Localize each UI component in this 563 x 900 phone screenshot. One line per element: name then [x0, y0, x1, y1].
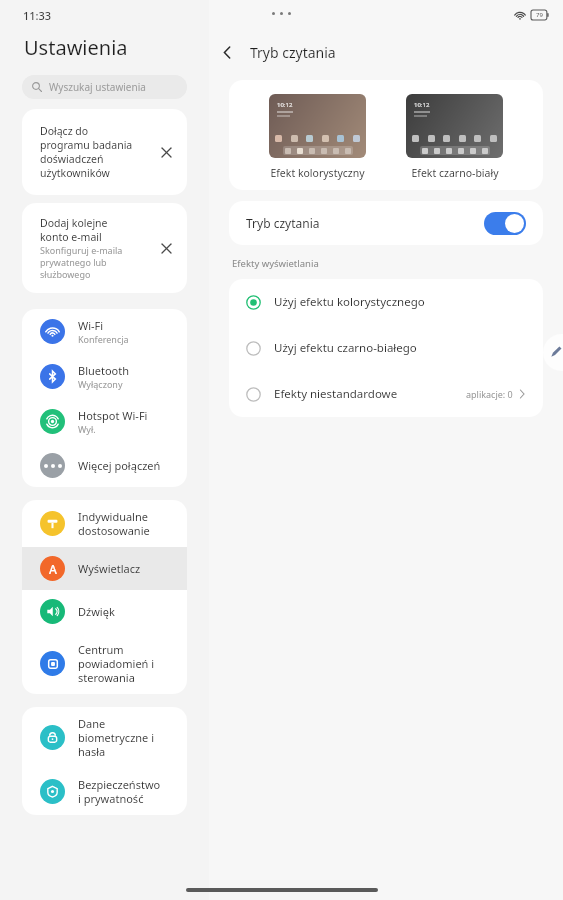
staticText: użytkowników [40, 166, 110, 180]
staticText: służbowego [40, 268, 91, 280]
staticText: Efekty niestandardowe [274, 386, 466, 402]
staticText: Efekty wyświetlania [232, 257, 319, 270]
button[interactable]: Centrum powiadomień i sterowania [22, 633, 187, 694]
button[interactable]: Zamknij [153, 139, 179, 165]
staticText: Indywidualne dostosowanie [78, 509, 150, 538]
button[interactable]: Tryb czytania przełącznik [484, 212, 526, 235]
staticText: Hotspot Wi-Fi [78, 408, 148, 423]
staticText: Efekt czarno-biały [411, 166, 499, 180]
staticText: Dźwięk [78, 604, 115, 619]
button[interactable]: Użyj efektu czarno-białego [229, 325, 543, 371]
button[interactable]: Wi-Fi [22, 309, 187, 354]
staticText: Centrum powiadomień i sterowania [78, 642, 155, 685]
staticText: Tryb czytania [246, 215, 484, 231]
staticText: Tryb czytania [250, 43, 336, 62]
button[interactable]: Efekty niestandardowe [229, 371, 543, 417]
staticText: Wył. [78, 423, 96, 435]
button[interactable]: Indywidualne dostosowanie [22, 500, 187, 547]
button[interactable]: Zamknij [153, 235, 179, 261]
button[interactable]: Dołącz do [22, 109, 187, 195]
staticText: Więcej połączeń [78, 458, 161, 473]
button[interactable]: 10:12 [269, 94, 366, 180]
button[interactable]: Użyj efektu kolorystycznego [229, 279, 543, 325]
staticText: Wyświetlacz [78, 561, 141, 576]
button[interactable]: Dane biometryczne i hasła [22, 707, 187, 768]
staticText: konto e-mail [40, 230, 102, 244]
staticText: 10:12 [414, 101, 430, 109]
staticText: 10:12 [277, 101, 293, 109]
button[interactable]: Dodaj kolejne [22, 203, 187, 293]
button[interactable]: 10:12 [406, 94, 503, 180]
staticText: Konferencja [78, 333, 129, 345]
staticText: Wi-Fi [78, 318, 104, 333]
staticText: doświadczeń [40, 152, 104, 166]
staticText: Dane biometryczne i hasła [78, 716, 155, 759]
staticText: 79 [536, 11, 543, 19]
button[interactable]: Wstecz [209, 34, 245, 70]
button[interactable]: Bluetooth [22, 354, 187, 399]
staticText: Dodaj kolejne [40, 216, 108, 230]
staticText: Wyszukaj ustawienia [49, 80, 146, 94]
button[interactable]: Tryb czytania [229, 201, 543, 245]
button[interactable]: Wyszukaj ustawienia [22, 75, 187, 99]
staticText: Efekt kolorystyczny [270, 166, 365, 180]
button[interactable]: A [22, 547, 187, 590]
staticText: A [49, 561, 57, 577]
button[interactable]: Hotspot Wi-Fi [22, 399, 187, 444]
button[interactable]: Więcej połączeń [22, 444, 187, 487]
staticText: Dołącz do [40, 124, 89, 138]
staticText: programu badania [40, 138, 133, 152]
staticText: Wyłączony [78, 378, 123, 390]
button[interactable]: Edytuj [543, 334, 563, 371]
staticText: Bezpieczeństwo i prywatność [78, 777, 161, 806]
button[interactable]: Bezpieczeństwo i prywatność [22, 768, 187, 815]
staticText: aplikacje: 0 [466, 388, 513, 400]
staticText: Użyj efektu kolorystycznego [274, 294, 526, 310]
staticText: Skonfiguruj e-maila [40, 244, 123, 256]
button[interactable]: Dźwięk [22, 590, 187, 633]
staticText: Ustawienia [24, 34, 128, 61]
staticText: Użyj efektu czarno-białego [274, 340, 526, 356]
staticText: prywatnego lub [40, 256, 107, 268]
staticText: Bluetooth [78, 363, 130, 378]
staticText: 11:33 [23, 8, 52, 23]
